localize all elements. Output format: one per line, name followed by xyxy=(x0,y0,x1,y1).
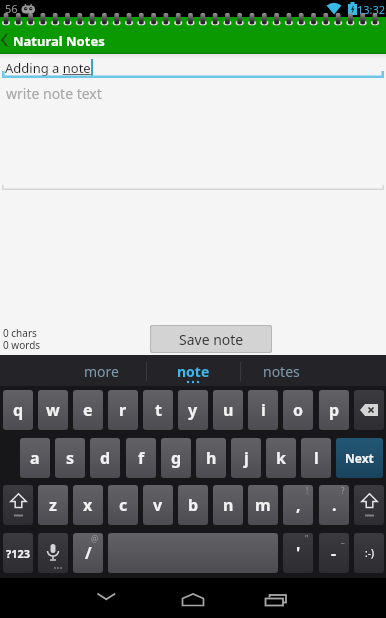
staticText: e xyxy=(83,399,93,421)
staticText: 56 xyxy=(5,1,18,16)
staticText: write note text xyxy=(6,84,102,103)
staticText: - xyxy=(331,542,337,564)
staticText: ?123 xyxy=(6,546,31,561)
staticText: t xyxy=(155,399,162,421)
staticText: 0 chars xyxy=(3,326,37,340)
staticText: , xyxy=(296,494,301,516)
staticText: h xyxy=(206,447,217,469)
staticText: 13:32 xyxy=(357,2,386,17)
staticText: j xyxy=(244,447,249,469)
staticText: p xyxy=(329,399,340,421)
staticText: k xyxy=(276,447,286,469)
staticText: Natural Notes xyxy=(13,32,105,50)
staticText: ! xyxy=(306,485,309,496)
staticText: r xyxy=(119,399,127,421)
staticText: a xyxy=(30,447,40,469)
staticText: b xyxy=(188,494,199,516)
staticText: ' xyxy=(296,542,301,564)
staticText: ? xyxy=(341,485,345,496)
staticText: / xyxy=(85,542,92,564)
staticText: " xyxy=(305,533,309,544)
staticText: 0 words xyxy=(3,338,41,352)
staticText: more xyxy=(84,362,119,381)
staticText: w xyxy=(46,399,60,421)
staticText: o xyxy=(293,399,304,421)
staticText: s xyxy=(66,447,75,469)
staticText: l xyxy=(314,447,319,469)
staticText: g xyxy=(171,447,182,469)
staticText: Next xyxy=(345,450,374,466)
staticText: d xyxy=(100,447,111,469)
staticText: i xyxy=(261,399,266,421)
staticText: x xyxy=(83,494,93,516)
staticText: u xyxy=(223,399,234,421)
staticText: c xyxy=(119,494,128,516)
staticText: . xyxy=(332,494,337,516)
staticText: Save note xyxy=(179,330,244,349)
staticText: @ xyxy=(91,533,99,544)
staticText: q xyxy=(13,399,24,421)
staticText: notes xyxy=(263,362,300,381)
staticText: z xyxy=(49,494,57,516)
staticText: Adding a note xyxy=(5,59,91,77)
staticText: y xyxy=(188,399,198,421)
staticText: n xyxy=(223,494,234,516)
staticText: _ xyxy=(341,533,345,544)
staticText: f xyxy=(138,447,145,469)
staticText: :-) xyxy=(365,546,374,560)
staticText: m xyxy=(255,494,271,516)
staticText: note xyxy=(177,362,210,381)
staticText: v xyxy=(153,494,163,516)
